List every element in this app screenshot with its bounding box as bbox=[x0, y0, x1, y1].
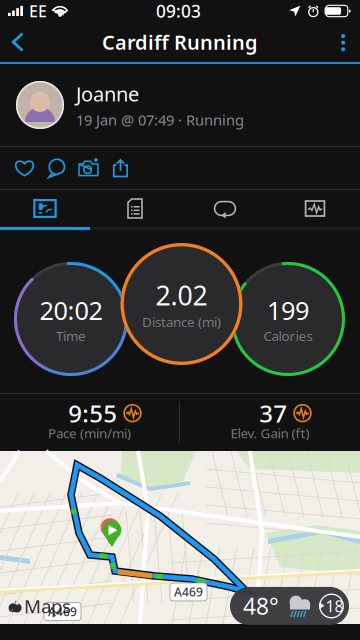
button[interactable]: Laps bbox=[180, 190, 270, 227]
staticText: A469 bbox=[174, 584, 203, 600]
button[interactable]: More options bbox=[323, 22, 360, 62]
staticText: Cardiff Running bbox=[102, 29, 258, 55]
staticText: 09:03 bbox=[156, 0, 201, 22]
staticText: 20:02 bbox=[39, 293, 102, 327]
button[interactable]: Share bbox=[104, 147, 136, 188]
staticText: 18 bbox=[325, 595, 343, 617]
staticText: 2.02 bbox=[155, 277, 207, 313]
staticText: 199 bbox=[267, 293, 309, 327]
staticText: EE bbox=[29, 0, 47, 22]
staticText: Joanne bbox=[76, 80, 139, 107]
button[interactable]: Like bbox=[8, 147, 40, 188]
staticText: Pace (min/mi) bbox=[48, 424, 131, 442]
staticText: A4 bbox=[248, 596, 263, 612]
button[interactable]: Details bbox=[90, 190, 180, 227]
button[interactable]: Add photo bbox=[72, 147, 104, 188]
staticText: 37 bbox=[259, 397, 287, 429]
staticText: Distance (mi) bbox=[142, 313, 221, 331]
staticText: 9:55 bbox=[68, 397, 117, 429]
staticText: A469 bbox=[48, 603, 77, 619]
button[interactable]: Activity bbox=[0, 190, 90, 227]
staticText: Elev. Gain (ft) bbox=[230, 424, 309, 442]
staticText: Maps bbox=[24, 594, 71, 618]
button[interactable]: Back bbox=[0, 22, 43, 62]
staticText: Calories bbox=[263, 327, 312, 345]
button[interactable]: Heart rate bbox=[270, 190, 360, 227]
staticText: 19 Jan @ 07:49 · Running bbox=[76, 110, 244, 129]
button[interactable]: Comment bbox=[40, 147, 72, 188]
staticText: 48° bbox=[243, 591, 279, 621]
staticText: Time bbox=[56, 327, 86, 345]
